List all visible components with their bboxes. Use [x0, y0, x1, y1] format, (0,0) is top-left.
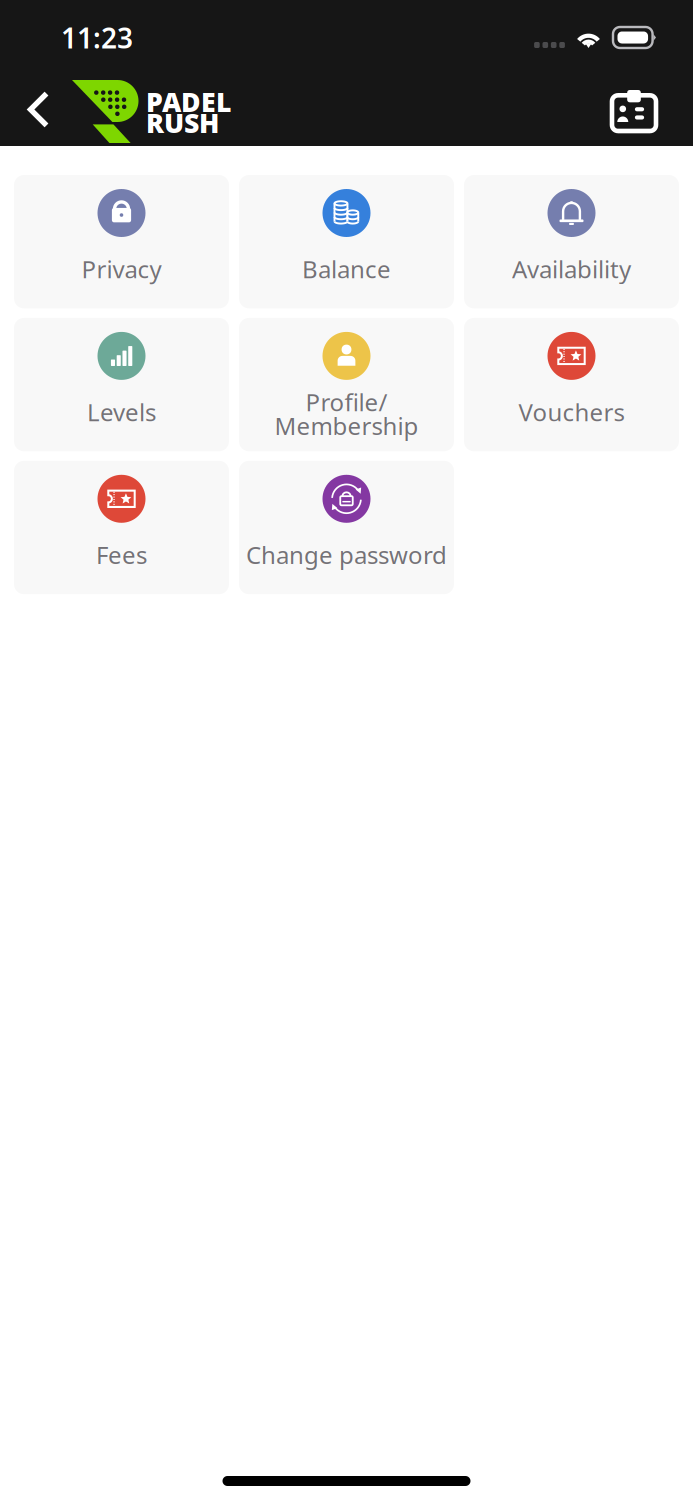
- button[interactable]: Profile/: [239, 318, 454, 451]
- staticText: Levels: [87, 396, 156, 428]
- staticText: Balance: [302, 253, 391, 285]
- button[interactable]: Balance: [239, 175, 454, 308]
- button[interactable]: Fees: [14, 461, 229, 594]
- button[interactable]: Membership card: [596, 72, 693, 146]
- staticText: Change password: [246, 539, 447, 571]
- button[interactable]: Back: [0, 72, 67, 146]
- button[interactable]: Change password: [239, 461, 454, 594]
- staticText: Profile/: [305, 386, 387, 418]
- staticText: PADEL: [146, 84, 232, 119]
- staticText: Membership: [274, 410, 418, 442]
- button[interactable]: Levels: [14, 318, 229, 451]
- staticText: Vouchers: [518, 396, 624, 428]
- button[interactable]: Vouchers: [464, 318, 679, 451]
- button[interactable]: Availability: [464, 175, 679, 308]
- staticText: RUSH: [146, 105, 219, 140]
- staticText: Privacy: [81, 253, 161, 285]
- button[interactable]: Privacy: [14, 175, 229, 308]
- staticText: 11:23: [61, 19, 133, 56]
- staticText: Availability: [512, 253, 631, 285]
- staticText: Fees: [96, 539, 147, 571]
